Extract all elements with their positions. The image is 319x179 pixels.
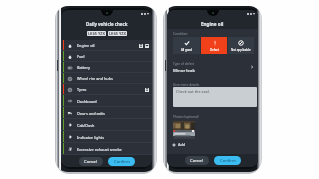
staticText: Check out the seal. [176,89,210,94]
button[interactable]: Fuel [61,51,152,62]
staticText: Give more details [173,83,200,87]
button[interactable]: Cab/Dash [61,119,152,131]
staticText: Fuel [77,54,85,59]
staticText: Indicator lights [77,135,104,140]
staticText: Dashboard [77,99,97,104]
staticText: Confirm [220,158,236,164]
staticText: Engine oil [201,21,224,27]
button[interactable]: Battery [61,62,152,73]
button[interactable]: Doors and exits [61,107,152,119]
button[interactable]: Not applicable [228,37,254,54]
staticText: Wheel rim and hubs [77,76,113,81]
button[interactable]: Indicator lights [61,131,152,143]
button[interactable]: Dashboard [61,95,152,107]
staticText: All good [181,48,193,52]
staticText: Condition [173,32,188,36]
staticText: Confirm [114,159,130,165]
staticText: Add [178,142,186,147]
staticText: Cab/Dash [77,123,95,128]
staticText: Engine oil [77,43,95,48]
button[interactable]: All good [173,37,200,54]
staticText: Battery [77,65,90,70]
staticText: Doors and exits [77,111,105,116]
button[interactable]: Tyres [61,84,152,95]
staticText: Daily vehicle check [86,21,128,27]
button[interactable]: Confirm [108,157,135,166]
staticText: Minor leak [173,67,195,73]
button[interactable]: Type of defect [167,61,258,73]
button[interactable]: Engine oil [61,40,152,51]
staticText: Excessive exhaust smoke [77,147,122,152]
staticText: Type of defect [173,62,195,66]
staticText: Cancel [84,159,98,165]
button[interactable]: Add [172,142,186,147]
button[interactable]: Defect [201,37,227,54]
button[interactable]: Wheel rim and hubs [61,73,152,84]
button[interactable]: Excessive exhaust smoke [61,143,152,155]
staticText: Photos (optional) [173,115,199,119]
staticText: Not applicable [231,48,251,52]
button[interactable]: Cancel [79,157,103,166]
staticText: LK65 YZX [88,31,106,36]
staticText: Cancel [190,158,204,164]
staticText: Defect [210,48,219,52]
button[interactable]: Cancel [185,156,209,165]
staticText: Tyres [77,87,87,92]
button[interactable]: Confirm [214,156,241,165]
staticText: LK65 YZX [109,31,127,36]
